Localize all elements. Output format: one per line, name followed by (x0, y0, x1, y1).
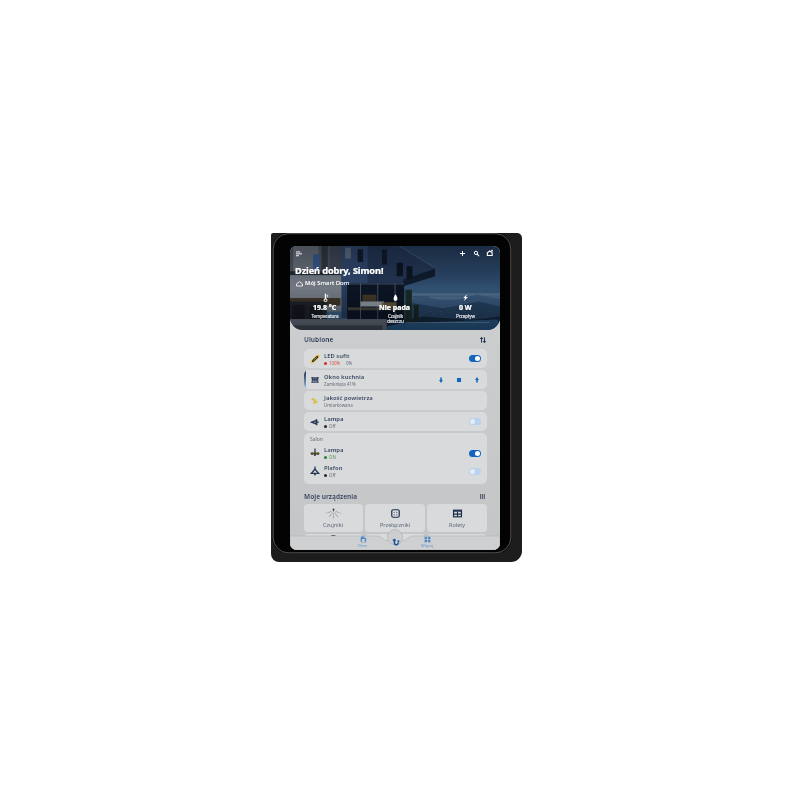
staticText: Klimat (387, 547, 404, 550)
button[interactable]: Toggle (469, 418, 481, 425)
button[interactable]: Lampa (304, 412, 487, 431)
staticText: 19.8 °C (313, 303, 337, 313)
button[interactable]: View options (478, 492, 487, 501)
button[interactable]: Dom (348, 536, 378, 549)
button[interactable]: 0 W (430, 293, 500, 319)
staticText: Ulubione (304, 335, 334, 344)
button[interactable]: Okno kuchnia (304, 370, 487, 389)
button[interactable]: Stop (454, 375, 463, 384)
staticText: Światła (324, 547, 343, 550)
button[interactable]: Rolety (427, 504, 487, 532)
staticText: Przełączniki (380, 521, 411, 528)
staticText: Kamery (447, 547, 467, 550)
button[interactable]: Nie pada (360, 293, 430, 325)
staticText: LED sufit (324, 352, 350, 360)
button[interactable]: Czujniki (304, 504, 363, 532)
staticText: Lampa (324, 415, 344, 423)
button[interactable]: Toggle (469, 468, 481, 475)
button[interactable]: Menu (294, 249, 303, 258)
staticText: Temperatura (311, 313, 339, 319)
staticText: Off (329, 423, 336, 429)
button[interactable]: Add (457, 248, 467, 258)
button[interactable]: Światła (304, 534, 363, 550)
staticText: Nie pada (379, 303, 411, 313)
staticText: 0 W (459, 303, 472, 313)
staticText: Okno kuchnia (324, 373, 365, 381)
staticText: Mój Smart Dom (305, 279, 350, 287)
staticText: Rolety (449, 521, 466, 528)
staticText: Przepływ (456, 313, 475, 319)
staticText: Umiarkowana (324, 402, 353, 408)
button[interactable]: Add device (485, 248, 495, 258)
staticText: Off (329, 472, 336, 478)
staticText: Lampa (324, 446, 344, 454)
button[interactable]: Lampa (304, 444, 487, 462)
button[interactable]: Plafon (304, 462, 487, 480)
button[interactable]: Klimat (365, 534, 425, 550)
staticText: Zamknięta 41% (324, 381, 356, 387)
staticText: ON (329, 454, 336, 460)
staticText: Jakość powietrza (324, 394, 373, 402)
button[interactable]: Toggle (469, 355, 481, 362)
button[interactable]: Assistant (388, 534, 403, 549)
button[interactable]: LED sufit (304, 349, 487, 368)
staticText: Więcej (421, 543, 434, 548)
staticText: Moje urządzenia (304, 492, 358, 501)
staticText: Czujniki (323, 521, 344, 528)
button[interactable]: 19.8 °C (290, 293, 360, 319)
button[interactable]: Down (436, 375, 445, 384)
button[interactable]: Przełączniki (365, 504, 425, 532)
staticText: Czujnik deszczu (387, 313, 404, 325)
button[interactable]: Sort (478, 335, 487, 344)
button[interactable]: Jakość powietrza (304, 391, 487, 410)
staticText: 100% (329, 360, 341, 366)
staticText: Plafon (324, 464, 343, 472)
button[interactable]: Więcej (412, 536, 442, 549)
staticText: Dom (358, 543, 368, 548)
button[interactable]: Kamery (427, 534, 487, 550)
button[interactable]: Search (471, 248, 481, 258)
staticText: Salon (310, 436, 323, 443)
staticText: Dzień dobry, Simon! (295, 264, 384, 277)
button[interactable]: Up (472, 375, 481, 384)
button[interactable]: Toggle (469, 450, 481, 457)
staticText: 0% (346, 360, 353, 366)
